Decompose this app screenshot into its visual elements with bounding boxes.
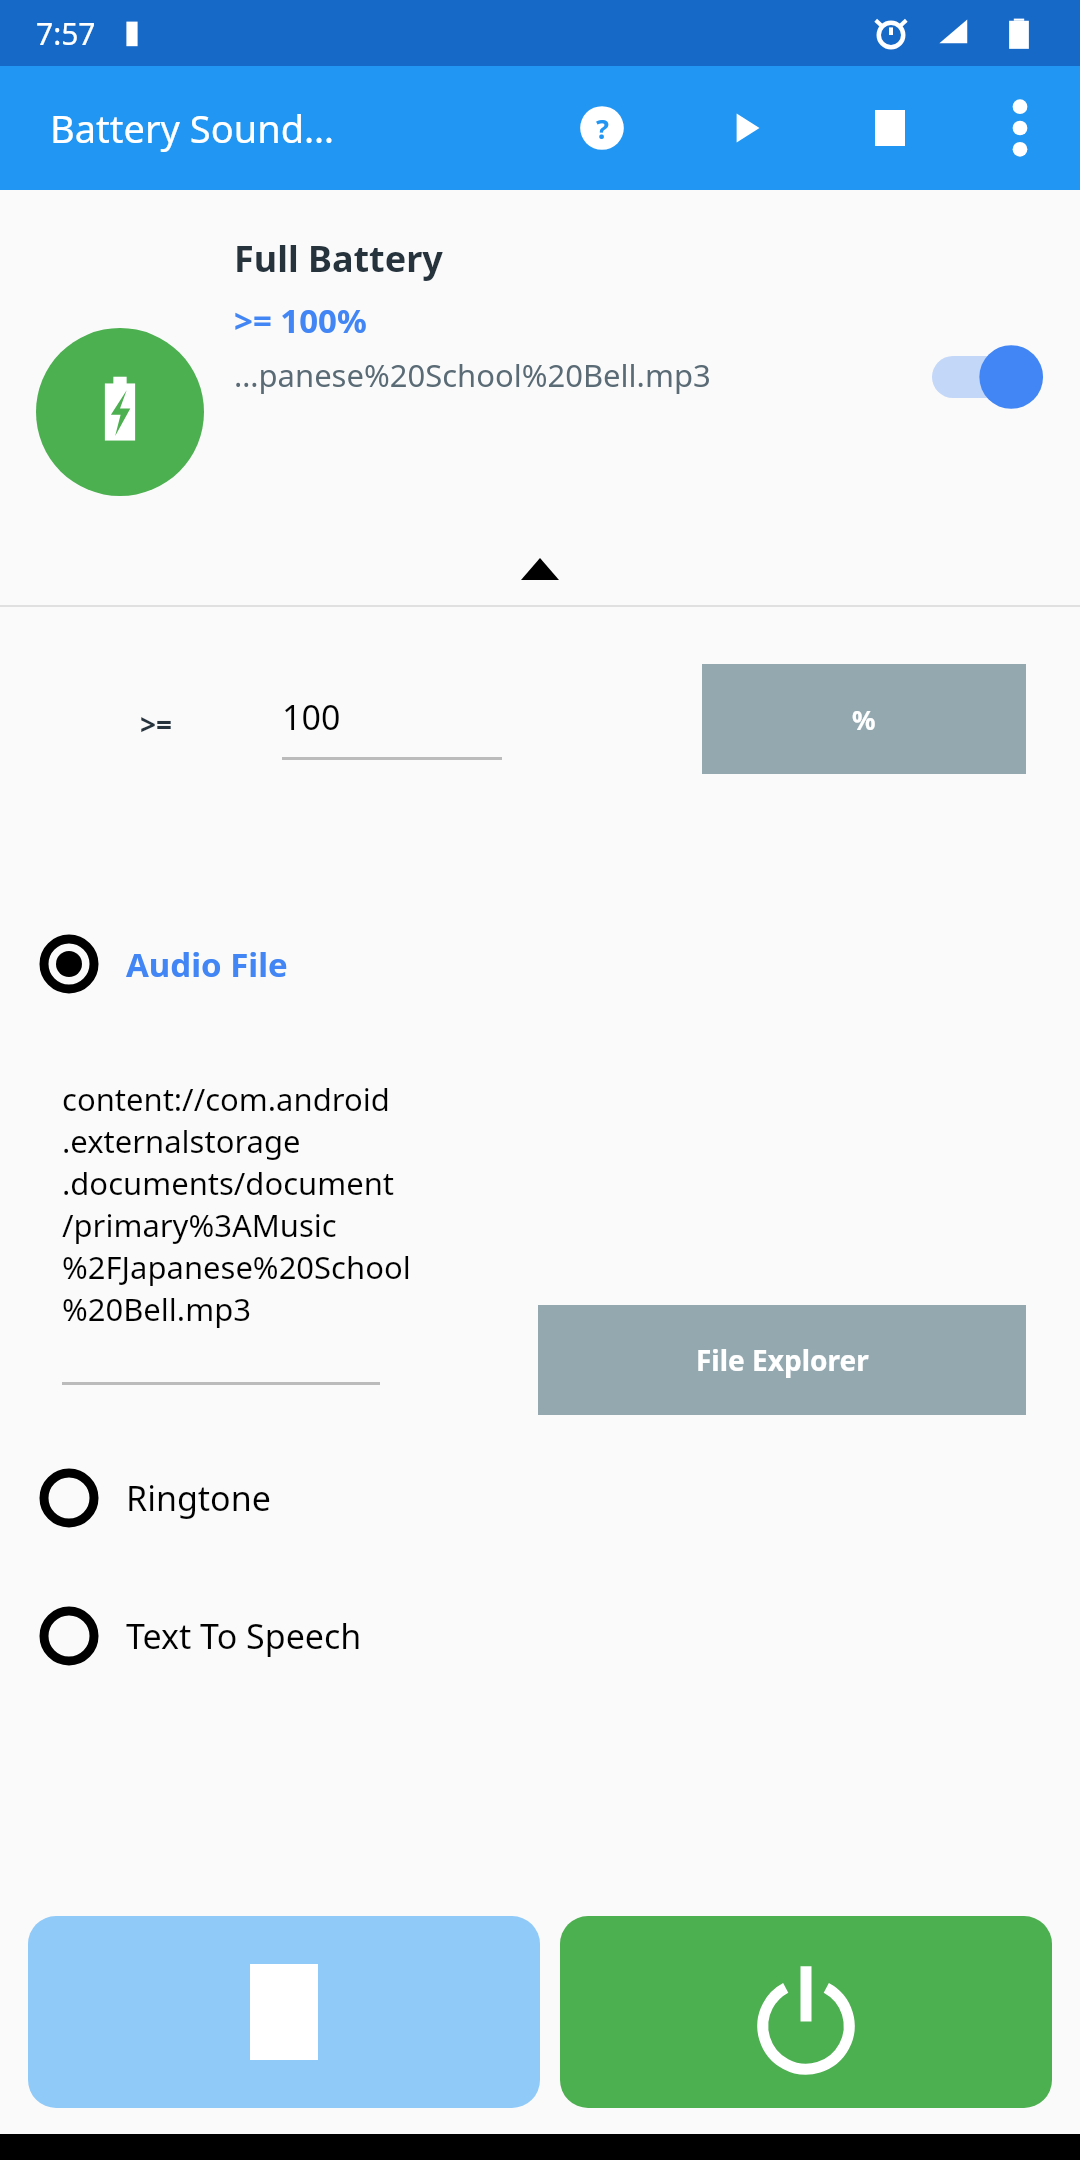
staticText: %2FJapanese%20School <box>62 1246 411 1288</box>
staticText: /primary%3AMusic <box>62 1204 337 1246</box>
staticText: Battery Sound… <box>50 102 335 154</box>
staticText: >= <box>140 705 173 743</box>
staticText: .documents/document <box>62 1162 395 1204</box>
button[interactable]: Enable alert <box>932 342 1042 412</box>
staticText: >= 100% <box>234 298 367 343</box>
button[interactable]: File Explorer <box>538 1305 1026 1415</box>
button[interactable]: Start service <box>560 1916 1052 2108</box>
staticText: content://com.android <box>62 1078 390 1120</box>
staticText: …panese%20School%20Bell.mp3 <box>234 354 711 396</box>
button[interactable]: Audio File <box>40 920 460 1008</box>
staticText: 7:57 <box>36 13 96 54</box>
button[interactable]: % <box>702 664 1026 774</box>
staticText: % <box>852 702 876 737</box>
staticText: %20Bell.mp3 <box>62 1288 251 1330</box>
button[interactable]: More options <box>972 80 1068 176</box>
staticText: Audio File <box>126 942 288 987</box>
button[interactable]: Stop <box>842 80 938 176</box>
button[interactable]: Stop service <box>28 1916 540 2108</box>
button[interactable]: Ringtone <box>40 1454 460 1542</box>
staticText: ? <box>596 110 609 147</box>
button[interactable]: Help <box>554 80 650 176</box>
staticText: 100 <box>282 694 341 740</box>
staticText: Full Battery <box>234 234 443 283</box>
staticText: Text To Speech <box>126 1613 362 1659</box>
staticText: File Explorer <box>696 1341 869 1379</box>
button[interactable]: Play <box>698 80 794 176</box>
button[interactable]: Full Battery <box>0 190 1080 605</box>
staticText: Ringtone <box>126 1475 271 1521</box>
button[interactable]: Text To Speech <box>40 1592 520 1680</box>
staticText: .externalstorage <box>62 1120 301 1162</box>
